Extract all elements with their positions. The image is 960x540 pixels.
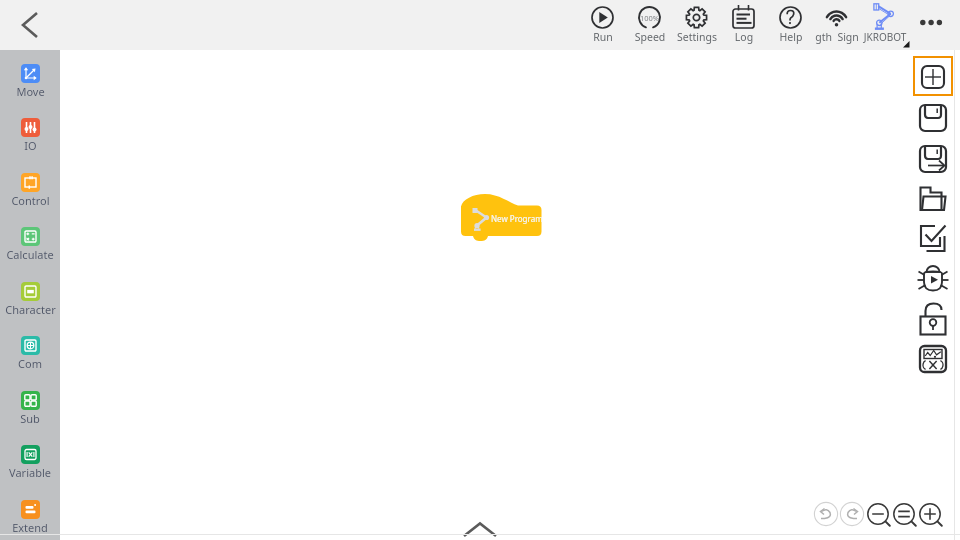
button[interactable] [767, 0, 814, 50]
button[interactable] [579, 0, 626, 50]
staticText: Character [5, 302, 56, 317]
staticText: Run [558, 30, 648, 44]
button[interactable] [813, 0, 860, 50]
staticText: New Program [491, 213, 543, 224]
staticText: Settings [652, 30, 742, 44]
button[interactable]: Debug [910, 259, 954, 299]
staticText: 100% [640, 13, 660, 23]
staticText: Move [16, 84, 45, 99]
button[interactable]: Zoom out [862, 498, 896, 532]
staticText: IO [24, 138, 37, 153]
button[interactable]: Save as [910, 139, 954, 179]
staticText: Calculate [6, 247, 54, 262]
button[interactable]: Unlock [910, 299, 954, 339]
button[interactable] [720, 0, 767, 50]
button[interactable]: IO [0, 118, 60, 160]
button[interactable]: New [910, 57, 954, 97]
button[interactable]: Monitor [910, 339, 954, 379]
button[interactable]: Redo [836, 498, 870, 532]
button[interactable]: Move [0, 64, 60, 106]
staticText: Help [746, 30, 836, 44]
button[interactable] [673, 0, 720, 50]
button[interactable]: Calculate [0, 227, 60, 269]
button[interactable]: Actual size [888, 498, 922, 532]
button[interactable]: Control [0, 173, 60, 215]
button[interactable]: Undo [810, 498, 844, 532]
staticText: Com [18, 356, 42, 371]
staticText: gth Sign [792, 30, 882, 44]
button[interactable]: Verify [910, 219, 954, 259]
staticText: Extend [12, 520, 48, 535]
button[interactable]: More options [908, 0, 960, 50]
button[interactable]: New Program [461, 194, 542, 240]
staticText: Speed [628, 30, 672, 44]
button[interactable]: Com [0, 336, 60, 378]
button[interactable]: Zoom in [914, 498, 948, 532]
button[interactable]: Open [910, 179, 954, 219]
staticText: Sub [20, 411, 40, 426]
staticText: JKROBOT [840, 30, 930, 44]
button[interactable]: Extend [0, 500, 60, 540]
button[interactable] [861, 0, 908, 50]
staticText: Variable [9, 465, 51, 480]
button[interactable]: 100% [626, 0, 673, 50]
staticText: Log [699, 30, 789, 44]
button[interactable]: Back [8, 0, 52, 50]
button[interactable]: Variable [0, 445, 60, 487]
button[interactable]: Sub [0, 391, 60, 433]
button[interactable]: Save [910, 98, 954, 138]
staticText: Control [11, 193, 50, 208]
button[interactable]: Expand panel [450, 510, 510, 538]
button[interactable]: Character [0, 282, 60, 324]
